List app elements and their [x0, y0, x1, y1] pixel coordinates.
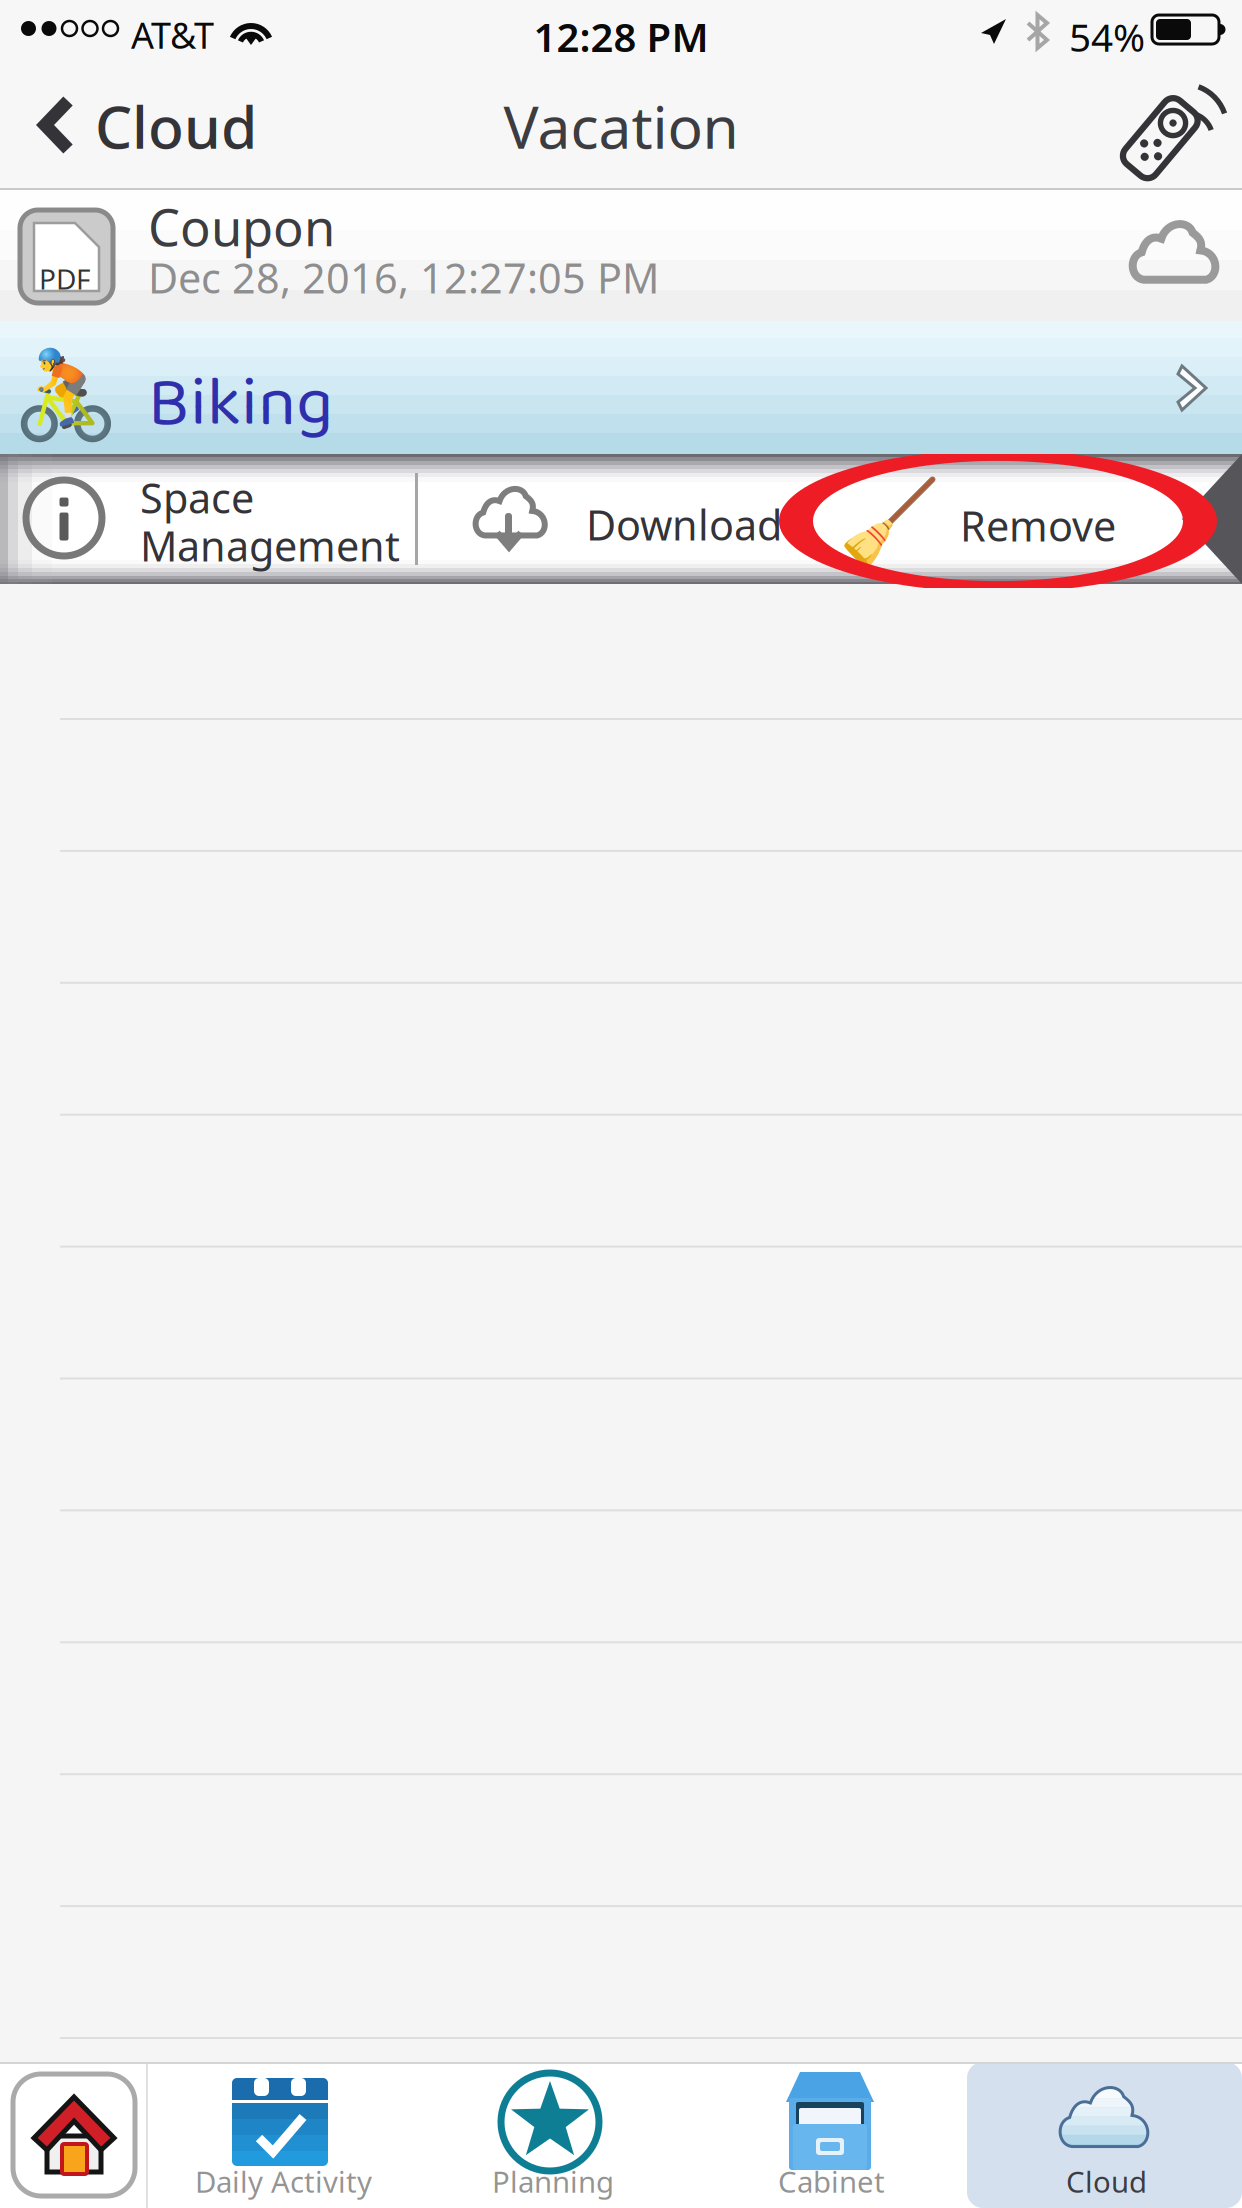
staticText: 🚴 [12, 346, 120, 445]
staticText: Cloud [1066, 2162, 1147, 2201]
staticText: Coupon [148, 193, 335, 260]
staticText: AT&T [131, 11, 214, 59]
staticText: 🧹 [838, 476, 941, 570]
button[interactable]: Daily Activity [150, 2062, 410, 2208]
staticText: Remove [960, 498, 1116, 553]
button[interactable]: PDF [0, 190, 1242, 321]
staticText: Biking [148, 349, 333, 460]
button[interactable]: Cabinet [690, 2062, 967, 2208]
button[interactable]: Cloud [0, 70, 270, 188]
staticText: 54% [1069, 11, 1145, 62]
staticText: Planning [492, 2162, 614, 2201]
staticText: 12:28 PM [533, 10, 708, 63]
staticText: Cloud [95, 87, 257, 165]
staticText: Vacation [503, 87, 738, 165]
button[interactable]: Space [140, 470, 408, 570]
staticText: Download [586, 497, 782, 552]
button[interactable]: Remote [1082, 70, 1242, 188]
staticText: Management [140, 518, 400, 573]
button[interactable]: 🚴 [0, 321, 1242, 454]
staticText: Space [140, 470, 254, 525]
button[interactable]: 🧹 [820, 466, 1150, 574]
staticText: Dec 28, 2016, 12:27:05 PM [148, 250, 659, 305]
staticText: PDF [39, 260, 91, 297]
button[interactable]: Home [13, 2074, 135, 2196]
button[interactable]: Planning [410, 2062, 690, 2208]
staticText: Daily Activity [195, 2162, 372, 2201]
staticText: Cabinet [778, 2162, 885, 2201]
button[interactable]: Cloud [967, 2062, 1242, 2208]
button[interactable]: Download [470, 484, 770, 558]
